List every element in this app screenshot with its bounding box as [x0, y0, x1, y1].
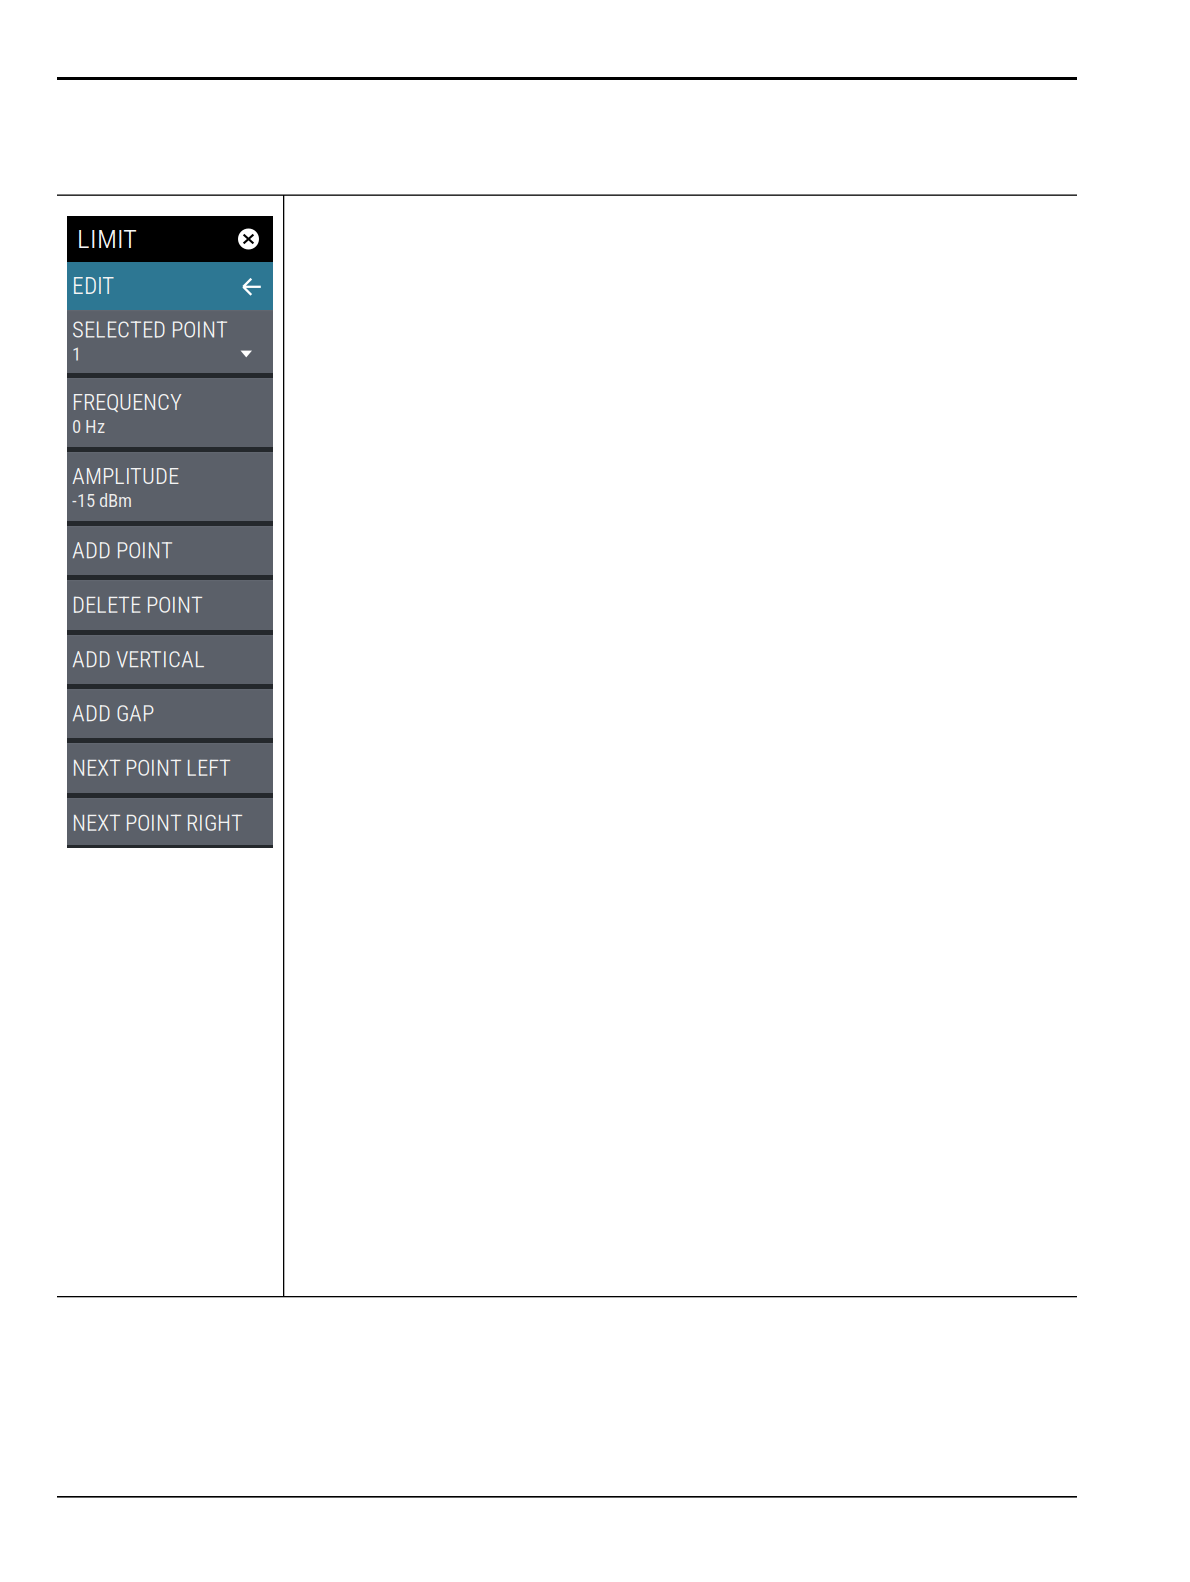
button[interactable]: EDIT — [67, 262, 273, 310]
button[interactable]: ADD POINT — [67, 526, 273, 575]
button[interactable]: Close limit menu — [236, 226, 261, 251]
staticText: NEXT POINT LEFT — [72, 755, 231, 781]
staticText: SELECTED POINT — [72, 316, 228, 343]
staticText: EDIT — [72, 272, 114, 300]
button[interactable]: ADD GAP — [67, 689, 273, 738]
button[interactable]: SELECTED POINT — [67, 310, 273, 373]
button[interactable]: NEXT POINT LEFT — [67, 743, 273, 793]
staticText: FREQUENCY — [72, 389, 182, 416]
button[interactable]: AMPLITUDE — [67, 452, 273, 521]
button[interactable]: ADD VERTICAL — [67, 635, 273, 684]
staticText: NEXT POINT RIGHT — [72, 810, 243, 836]
staticText: ADD POINT — [72, 537, 173, 564]
staticText: AMPLITUDE — [72, 463, 179, 490]
staticText: 0 Hz — [72, 416, 105, 437]
button[interactable]: FREQUENCY — [67, 378, 273, 447]
staticText: 1 — [72, 343, 81, 365]
staticText: ADD GAP — [72, 700, 154, 727]
staticText: DELETE POINT — [72, 592, 203, 618]
staticText: -15 dBm — [72, 490, 132, 511]
button[interactable]: NEXT POINT RIGHT — [67, 798, 273, 848]
staticText: LIMIT — [77, 223, 137, 255]
button[interactable]: DELETE POINT — [67, 580, 273, 630]
staticText: ADD VERTICAL — [72, 646, 205, 673]
